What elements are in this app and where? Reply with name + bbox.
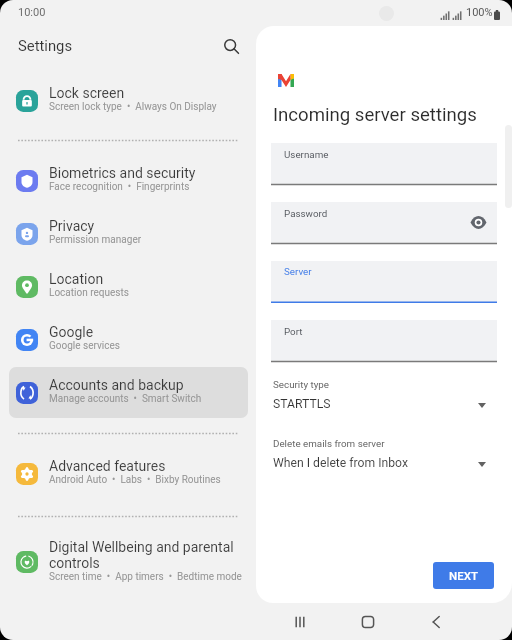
button[interactable]: Username [271,143,497,185]
button[interactable]: Search [217,33,245,61]
button[interactable]: Password [271,202,497,244]
staticText: Face recognition • Fingerprints [49,181,190,193]
staticText: Password [284,208,328,219]
staticText: Location [49,271,104,287]
staticText: Screen lock type • Always On Display [49,101,217,113]
button[interactable]: Delete emails from server [273,438,497,484]
staticText: Security type [273,379,330,390]
button[interactable]: NEXT [433,562,494,589]
button[interactable]: Security type [273,379,497,425]
staticText: Settings [18,37,73,54]
button[interactable] [9,529,248,593]
staticText: Username [284,149,329,160]
staticText: Port [284,326,303,337]
button[interactable] [9,75,248,126]
staticText: Biometrics and security [49,165,196,181]
staticText: Manage accounts • Smart Switch [49,393,202,405]
staticText: Permission manager [49,234,142,246]
staticText: Digital Wellbeing and parental controls [49,539,249,571]
staticText: Server [284,266,312,277]
staticText: Delete emails from server [273,438,385,449]
button[interactable] [9,155,248,206]
button[interactable]: Server [271,261,497,303]
staticText: Screen time • App timers • Bedtime mode [49,571,242,583]
staticText: Privacy [49,218,95,234]
staticText: 100% [466,6,493,19]
button[interactable] [9,314,248,365]
staticText: 10:00 [18,6,46,19]
staticText: Android Auto • Labs • Bixby Routines [49,474,221,486]
staticText: STARTTLS [273,397,331,411]
button[interactable] [9,261,248,312]
button[interactable]: Recents [270,604,330,640]
staticText: Lock screen [49,85,125,101]
button[interactable]: Home [338,604,398,640]
staticText: When I delete from Inbox [273,456,408,470]
button[interactable] [9,448,248,499]
staticText: Google services [49,340,120,352]
staticText: NEXT [449,569,478,582]
button[interactable]: Port [271,320,497,362]
staticText: Accounts and backup [49,377,184,393]
staticText: Google [49,324,94,340]
button[interactable] [9,367,248,418]
button[interactable] [9,208,248,259]
staticText: Advanced features [49,458,166,474]
staticText: Incoming server settings [273,104,477,126]
button[interactable]: Back [405,604,465,640]
staticText: Location requests [49,287,129,299]
